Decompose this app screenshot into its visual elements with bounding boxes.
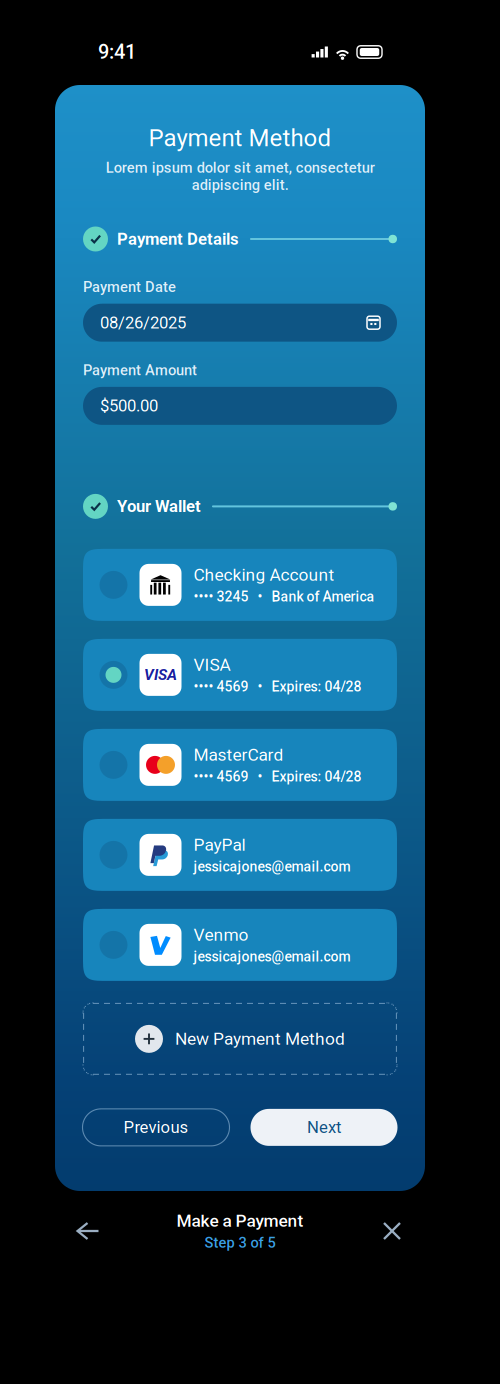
staticText: Payment Amount xyxy=(83,362,197,379)
button[interactable]: Venmo xyxy=(83,909,397,981)
button[interactable]: Next xyxy=(250,1109,397,1146)
staticText: VISA xyxy=(144,666,177,684)
button[interactable]: PayPal xyxy=(83,819,397,891)
button[interactable]: VISA xyxy=(83,639,397,711)
staticText: New Payment Method xyxy=(175,1029,345,1049)
button[interactable]: Checking Account xyxy=(83,549,397,621)
staticText: jessicajones@email.com xyxy=(193,949,350,965)
button[interactable]: Close xyxy=(366,1206,418,1256)
staticText: Previous xyxy=(123,1118,188,1137)
button[interactable]: Previous xyxy=(82,1109,229,1146)
staticText: $500.00 xyxy=(100,396,158,416)
staticText: Lorem ipsum dolor sit amet, consectetur … xyxy=(105,159,374,193)
staticText: Your Wallet xyxy=(117,497,201,516)
staticText: MasterCard xyxy=(193,745,283,765)
staticText: Next xyxy=(307,1118,341,1137)
button[interactable]: MasterCard xyxy=(83,729,397,801)
staticText: Venmo xyxy=(193,925,248,945)
staticText: •••• 4569 • Expires: 04/28 xyxy=(193,769,361,785)
staticText: VISA xyxy=(193,655,230,675)
staticText: PayPal xyxy=(193,835,245,855)
staticText: •••• 4569 • Expires: 04/28 xyxy=(193,679,361,695)
staticText: Payment Method xyxy=(148,124,331,152)
staticText: Make a Payment xyxy=(176,1211,303,1231)
button[interactable]: Back xyxy=(62,1206,114,1256)
staticText: Payment Date xyxy=(83,278,176,296)
staticText: 08/26/2025 xyxy=(100,313,186,332)
staticText: •••• 3245 • Bank of America xyxy=(193,589,374,605)
staticText: 9:41 xyxy=(98,40,136,64)
staticText: Payment Details xyxy=(117,229,239,249)
staticText: Checking Account xyxy=(193,565,334,585)
staticText: jessicajones@email.com xyxy=(193,859,350,875)
staticText: Step 3 of 5 xyxy=(204,1234,275,1251)
button[interactable]: New Payment Method xyxy=(83,1003,397,1075)
